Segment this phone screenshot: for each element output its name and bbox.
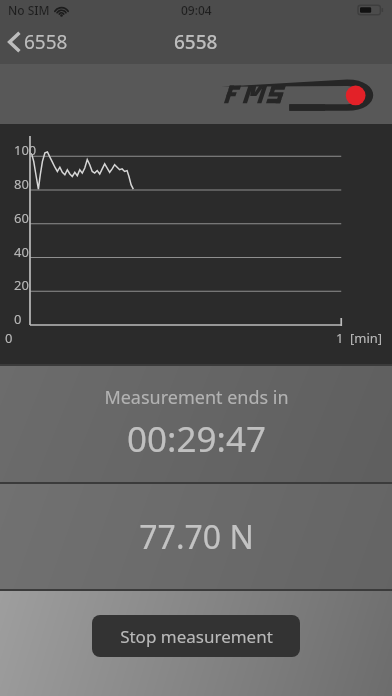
staticText: 1 <box>336 329 344 347</box>
staticText: 40 <box>14 243 29 261</box>
staticText: 77.70 N <box>139 515 254 559</box>
staticText: 0 <box>5 329 13 347</box>
button[interactable]: 6558 <box>0 21 80 63</box>
staticText: [min] <box>350 329 383 347</box>
staticText: No SIM <box>8 2 50 18</box>
staticText: 09:04 <box>181 2 212 18</box>
staticText: 100 <box>14 141 37 159</box>
staticText: 80 <box>14 175 29 193</box>
staticText: 00:29:47 <box>127 415 266 463</box>
staticText: 20 <box>14 276 29 294</box>
staticText: 6558 <box>24 29 68 55</box>
staticText: 0 <box>14 310 22 328</box>
button[interactable]: Stop measurement <box>92 615 300 657</box>
staticText: 60 <box>14 209 29 227</box>
staticText: 6558 <box>174 29 218 55</box>
staticText: Measurement ends in <box>104 385 289 410</box>
staticText: Stop measurement <box>120 625 273 648</box>
